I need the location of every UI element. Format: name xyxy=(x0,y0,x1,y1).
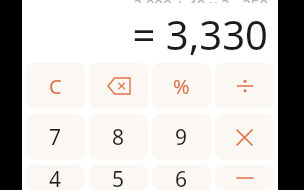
button[interactable]: Percent xyxy=(152,63,211,109)
staticText: % xyxy=(173,73,190,100)
staticText: = 3,330 xyxy=(132,7,268,56)
button[interactable]: 8 xyxy=(89,114,148,160)
staticText: 2,000 + 40 x 2 - 250 xyxy=(133,0,268,3)
button[interactable]: 4 xyxy=(26,165,85,190)
button[interactable]: Divide xyxy=(215,63,274,109)
button[interactable]: 7 xyxy=(26,114,85,160)
button[interactable]: Backspace xyxy=(89,63,148,109)
staticText: 7 xyxy=(49,123,62,152)
button[interactable]: 9 xyxy=(152,114,211,160)
staticText: 4 xyxy=(49,165,62,190)
button[interactable]: 5 xyxy=(89,165,148,190)
button[interactable]: Minus xyxy=(215,165,274,190)
button[interactable]: Multiply xyxy=(215,114,274,160)
button[interactable]: 6 xyxy=(152,165,211,190)
staticText: C xyxy=(49,73,62,100)
button[interactable]: Clear xyxy=(26,63,85,109)
staticText: 8 xyxy=(112,123,125,152)
staticText: 5 xyxy=(112,165,125,190)
staticText: 9 xyxy=(175,123,188,152)
staticText: 6 xyxy=(175,165,188,190)
